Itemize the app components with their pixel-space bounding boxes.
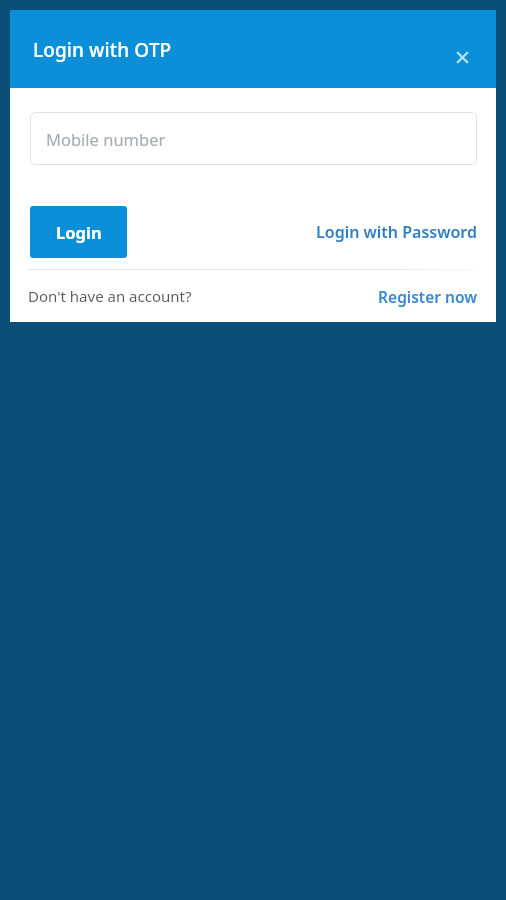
- staticText: Login with Password: [316, 221, 477, 243]
- button[interactable]: Login with Password: [292, 206, 477, 258]
- button[interactable]: Mobile number: [30, 112, 477, 165]
- button[interactable]: Don't have an account?: [28, 286, 192, 306]
- staticText: Login with OTP: [33, 37, 172, 63]
- staticText: Mobile number: [46, 128, 166, 150]
- button[interactable]: Login: [30, 206, 127, 258]
- button[interactable]: Register now: [193, 270, 477, 322]
- staticText: Register now: [378, 286, 477, 307]
- staticText: Login: [56, 221, 102, 243]
- button[interactable]: Close: [436, 31, 488, 83]
- staticText: Don't have an account?: [28, 286, 192, 306]
